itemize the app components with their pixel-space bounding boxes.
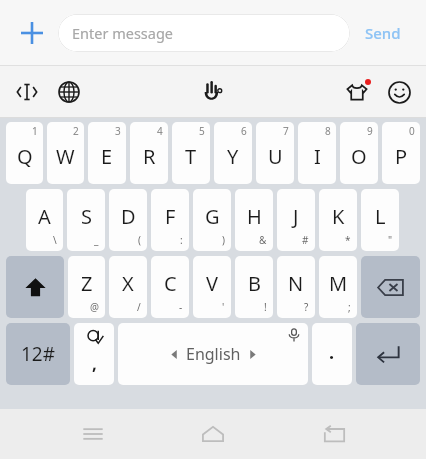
staticText: K [332,203,345,230]
staticText: * [345,233,351,247]
button[interactable]: Enter [356,323,420,385]
button[interactable]: 7 [256,122,294,184]
button[interactable]: TouchPal [190,69,236,115]
staticText: D [121,203,136,230]
staticText: ; [348,300,351,314]
staticText: & [259,233,267,247]
button[interactable]: H [235,189,273,251]
button[interactable]: Recent apps [65,409,121,459]
staticText: O [351,143,367,170]
button[interactable]: V [193,256,231,318]
staticText: English [186,343,241,365]
button[interactable]: F [151,189,189,251]
button[interactable]: 4 [130,122,168,184]
staticText: 9 [367,124,373,138]
button[interactable]: J [277,189,315,251]
button[interactable]: B [235,256,273,318]
button[interactable]: Voice input [286,327,301,342]
staticText: ' [222,300,225,314]
staticText: M [329,270,348,297]
staticText: - [179,300,183,314]
staticText: 5 [199,124,205,138]
staticText: " [388,233,393,247]
staticText: # [302,233,309,247]
button[interactable]: 2 [47,122,84,184]
button[interactable]: Autocorrect and comma [74,323,114,385]
button[interactable]: Shift [6,256,64,318]
staticText: Send [365,23,401,43]
button[interactable]: K [319,189,357,251]
button[interactable]: M [319,256,357,318]
staticText: H [247,203,262,230]
staticText: I [314,143,321,170]
staticText: T [185,143,197,170]
button[interactable]: 8 [298,122,336,184]
button[interactable]: Enter message [58,14,350,52]
staticText: A [38,203,51,230]
button[interactable]: Themes [336,71,378,113]
staticText: R [143,143,156,170]
staticText: @ [90,300,99,314]
staticText: Enter message [72,23,174,43]
button[interactable]: Emoji [378,71,420,113]
staticText: P [395,143,408,170]
button[interactable]: 0 [382,122,420,184]
staticText: : [180,233,183,247]
staticText: \ [53,233,57,247]
staticText: F [165,203,176,230]
staticText: Q [17,143,33,170]
button[interactable]: Z [68,256,105,318]
staticText: ) [222,233,225,247]
button[interactable]: N [277,256,315,318]
staticText: 6 [241,124,247,138]
staticText: E [101,143,113,170]
staticText: J [293,203,299,230]
staticText: / [137,300,141,314]
button[interactable]: 1 [6,122,43,184]
button[interactable]: Home [185,409,241,459]
staticText: 0 [409,124,415,138]
button[interactable]: C [151,256,189,318]
staticText: 12# [21,341,56,367]
button[interactable]: Back [306,409,362,459]
staticText: G [205,203,220,230]
staticText: C [164,270,177,297]
button[interactable]: Language [48,71,90,113]
staticText: 2 [73,124,79,138]
staticText: ? [304,300,309,314]
staticText: 3 [115,124,121,138]
staticText: W [56,143,75,170]
staticText: 1 [32,124,38,138]
staticText: 7 [283,124,289,138]
button[interactable]: L [361,189,399,251]
staticText: S [81,203,92,230]
staticText: N [288,270,304,297]
button[interactable]: A [26,189,63,251]
button[interactable]: Add attachment [10,11,54,55]
button[interactable]: 12# [6,323,70,385]
staticText: 4 [157,124,163,138]
button[interactable]: . [312,323,352,385]
button[interactable]: Send [350,11,416,55]
staticText: Z [81,270,93,297]
button[interactable]: 3 [88,122,126,184]
staticText: B [248,270,261,297]
button[interactable]: Backspace [361,256,420,318]
button[interactable]: Cursor control [6,71,48,113]
staticText: Y [227,143,239,170]
button[interactable]: X [109,256,147,318]
button[interactable]: 6 [214,122,252,184]
button[interactable]: S [67,189,105,251]
staticText: 8 [325,124,331,138]
button[interactable]: D [109,189,147,251]
button[interactable]: G [193,189,231,251]
button[interactable]: English [118,323,308,385]
staticText: , [92,352,97,375]
staticText: ( [138,233,141,247]
staticText: _ [94,233,99,247]
button[interactable]: 9 [340,122,378,184]
staticText: . [329,340,335,365]
staticText: ! [264,300,267,314]
staticText: X [122,270,134,297]
button[interactable]: 5 [172,122,210,184]
